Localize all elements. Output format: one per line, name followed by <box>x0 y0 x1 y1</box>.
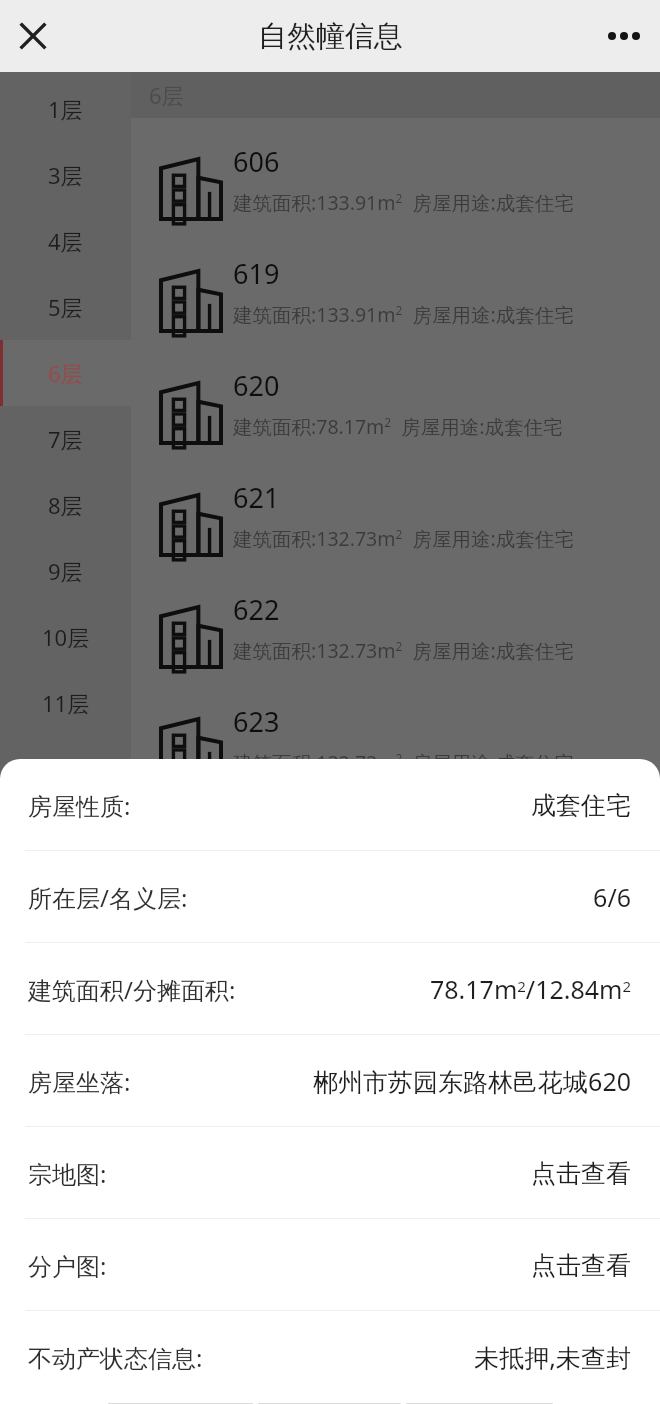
button[interactable]: 623 <box>131 678 660 790</box>
button[interactable]: 3层 <box>0 142 131 208</box>
staticText: 不动产状态信息: <box>28 1341 203 1374</box>
staticText: 自然幢信息 <box>258 18 403 55</box>
button[interactable]: 8层 <box>0 472 131 538</box>
button[interactable]: 5层 <box>0 274 131 340</box>
button[interactable]: 606 <box>131 118 660 230</box>
staticText: 建筑面积:132.73m2 房屋用途:成套住宅 <box>233 525 574 552</box>
button[interactable]: 7层 <box>0 406 131 472</box>
button[interactable]: 6层 <box>0 340 131 406</box>
staticText: 建筑面积/分摊面积: <box>28 973 236 1006</box>
staticText: 9层 <box>48 556 83 586</box>
staticText: 点击查看 <box>531 1158 631 1189</box>
staticText: 7层 <box>48 424 83 454</box>
staticText: 建筑面积:133.91m2 房屋用途:成套住宅 <box>233 189 574 216</box>
button[interactable]: 621 <box>131 454 660 566</box>
button[interactable]: 房屋坐落: <box>0 1035 660 1127</box>
button[interactable]: 622 <box>131 566 660 678</box>
staticText: 未抵押,未查封 <box>474 1340 631 1374</box>
staticText: 5层 <box>48 292 83 322</box>
staticText: 建筑面积:132.73m2 房屋用途:成套住宅 <box>233 637 574 664</box>
button[interactable]: More options <box>588 0 660 72</box>
button[interactable]: 建筑面积/分摊面积: <box>0 943 660 1035</box>
button[interactable]: 4层 <box>0 208 131 274</box>
staticText: 620 <box>233 367 280 404</box>
button[interactable]: 分户图: <box>0 1219 660 1311</box>
staticText: 1层 <box>48 94 83 124</box>
staticText: 622 <box>233 591 280 628</box>
staticText: 建筑面积:78.17m2 房屋用途:成套住宅 <box>233 413 563 440</box>
button[interactable]: 10层 <box>0 604 131 670</box>
staticText: 11层 <box>42 688 90 718</box>
button[interactable]: 9层 <box>0 538 131 604</box>
staticText: 郴州市苏园东路林邑花城620 <box>313 1064 631 1098</box>
button[interactable]: Close <box>0 0 66 72</box>
staticText: 点击查看 <box>531 1250 631 1281</box>
staticText: 6层 <box>149 80 184 110</box>
staticText: 623 <box>233 703 280 740</box>
staticText: 78.17m2/12.84m2 <box>429 972 631 1006</box>
button[interactable]: 11层 <box>0 670 131 736</box>
staticText: 619 <box>233 255 280 292</box>
staticText: 621 <box>233 479 280 516</box>
button[interactable]: 不动产状态信息: <box>0 1311 660 1403</box>
staticText: 6/6 <box>593 880 631 914</box>
staticText: 分户图: <box>28 1249 107 1282</box>
staticText: 房屋性质: <box>28 789 131 822</box>
button[interactable]: 1层 <box>0 76 131 142</box>
button[interactable]: 宗地图: <box>0 1127 660 1219</box>
staticText: 10层 <box>42 622 90 652</box>
staticText: 房屋坐落: <box>28 1065 131 1098</box>
staticText: 宗地图: <box>28 1157 107 1190</box>
staticText: 所在层/名义层: <box>28 881 188 914</box>
button[interactable]: 619 <box>131 230 660 342</box>
staticText: 8层 <box>48 490 83 520</box>
button[interactable]: 所在层/名义层: <box>0 851 660 943</box>
staticText: 建筑面积:132.73m2 房屋用途:成套住宅 <box>233 749 574 776</box>
staticText: 4层 <box>48 226 83 256</box>
staticText: 3层 <box>48 160 83 190</box>
staticText: 成套住宅 <box>531 790 631 821</box>
staticText: 6层 <box>48 358 83 388</box>
button[interactable]: 房屋性质: <box>0 759 660 851</box>
button[interactable]: 620 <box>131 342 660 454</box>
staticText: 606 <box>233 143 280 180</box>
staticText: 建筑面积:133.91m2 房屋用途:成套住宅 <box>233 301 574 328</box>
